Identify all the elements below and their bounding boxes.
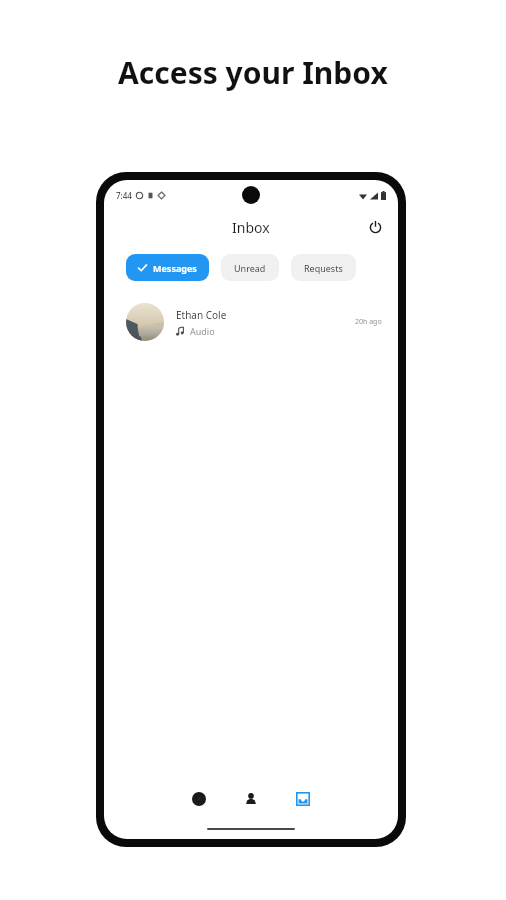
button[interactable]: Inbox xyxy=(288,784,318,814)
button[interactable]: Messages xyxy=(126,254,209,281)
button[interactable]: Ethan Cole xyxy=(104,299,398,345)
button[interactable]: Explore xyxy=(184,784,214,814)
staticText: Inbox xyxy=(232,218,270,237)
staticText: Access your Inbox xyxy=(118,52,388,93)
staticText: 20h ago xyxy=(355,317,382,327)
staticText: Unread xyxy=(234,262,266,274)
staticText: Messages xyxy=(153,262,197,274)
staticText: Requests xyxy=(304,262,343,274)
button[interactable]: Unread xyxy=(221,254,279,281)
staticText: Audio xyxy=(190,325,215,337)
staticText: Ethan Cole xyxy=(176,308,227,322)
staticText: 7:44 xyxy=(116,190,132,201)
button[interactable]: Requests xyxy=(291,254,356,281)
button[interactable]: Power xyxy=(362,214,388,240)
button[interactable]: Profile xyxy=(236,784,266,814)
